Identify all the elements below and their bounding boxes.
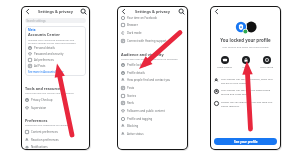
button[interactable]: Active status — [118, 130, 187, 138]
staticText: Content preferences — [31, 130, 58, 134]
staticText: Followers and public content — [127, 109, 165, 113]
staticText: Blocking — [127, 124, 139, 128]
button[interactable]: Your time on Facebook — [118, 14, 187, 22]
staticText: Your time on Facebook — [127, 16, 158, 20]
staticText: Customize your experience on Facebook. — [25, 123, 71, 126]
button[interactable]: Notifications — [22, 143, 89, 149]
staticText: Manage your connected experiences and ac… — [28, 38, 83, 44]
button[interactable]: Blocking — [118, 122, 187, 130]
button[interactable]: Dark mode — [118, 29, 187, 37]
staticText: Learn more — [260, 65, 273, 68]
staticText: How people find and contact you — [127, 78, 171, 82]
button[interactable]: Supervision — [22, 104, 89, 112]
staticText: Unlock — [242, 65, 250, 68]
button[interactable]: Back — [213, 8, 220, 15]
button[interactable]: Browser — [118, 21, 187, 29]
staticText: Audience and visibility — [121, 52, 164, 57]
staticText: Ad preferences — [34, 58, 54, 62]
button[interactable]: Unlock — [235, 56, 256, 68]
staticText: See your profile — [234, 140, 258, 144]
button[interactable]: Ad preferences — [28, 57, 83, 63]
button[interactable]: How people find and contact you — [118, 76, 187, 84]
button[interactable]: Learn more — [256, 56, 277, 68]
button[interactable]: Password and security — [28, 51, 83, 57]
staticText: Dark mode — [127, 31, 142, 35]
staticText: Privacy Checkup — [31, 98, 53, 102]
staticText: Ad Posts — [34, 64, 46, 68]
staticText: Notifications — [31, 145, 48, 149]
staticText: Profile details — [127, 71, 145, 75]
button[interactable]: Ad Posts — [28, 63, 83, 69]
staticText: Posts — [127, 86, 135, 90]
button[interactable]: Profile and tagging — [118, 115, 187, 123]
staticText: Active status — [127, 132, 144, 136]
button[interactable]: Back — [24, 8, 31, 15]
button[interactable]: Reels — [118, 99, 187, 107]
button[interactable]: Search settings — [25, 18, 86, 23]
button[interactable]: Reaction preferences — [22, 136, 89, 144]
staticText: Tools and resources — [25, 86, 63, 91]
staticText: Only friends can see your full-sized pro… — [221, 88, 277, 96]
staticText: Reaction preferences — [31, 138, 59, 142]
staticText: Preferences — [25, 118, 48, 123]
staticText: Profile locking — [127, 63, 146, 67]
button[interactable]: Posts — [118, 84, 187, 92]
staticText: Tools that help you control your experie… — [25, 91, 75, 94]
staticText: Search settings — [25, 19, 46, 23]
staticText: Meta — [28, 28, 36, 32]
staticText: Control who sees your info and posts on … — [121, 57, 179, 60]
staticText: People can still search for you and send… — [221, 100, 277, 108]
staticText: Your photos and posts are more private. — [211, 45, 280, 48]
button[interactable]: Connect with Hearing support — [118, 37, 187, 45]
button[interactable]: Followers and public content — [118, 107, 187, 115]
staticText: See more in Accounts Center — [28, 70, 64, 74]
button[interactable]: Personal details — [28, 45, 83, 51]
staticText: Personal details — [34, 46, 55, 50]
staticText: Password and security — [34, 52, 64, 56]
button[interactable]: Search — [178, 8, 185, 15]
staticText: Settings & privacy — [38, 9, 74, 14]
staticText: Supervision — [31, 106, 47, 110]
staticText: Invite friends — [217, 65, 232, 68]
button[interactable]: See your profile — [214, 138, 277, 145]
button[interactable]: Invite friends — [214, 56, 235, 68]
button[interactable]: Content preferences — [22, 128, 89, 136]
staticText: Stories — [127, 94, 137, 98]
button[interactable]: Back — [120, 8, 127, 15]
staticText: Profile and tagging — [127, 117, 153, 121]
staticText: Settings & privacy — [135, 9, 171, 14]
staticText: Reels — [127, 101, 134, 105]
staticText: Only friends can see your photos, posts … — [221, 77, 277, 85]
staticText: Accounts Center — [28, 32, 60, 37]
staticText: Connect with Hearing support — [127, 39, 167, 43]
staticText: Browser — [127, 23, 138, 27]
button[interactable]: Profile locking — [118, 61, 187, 69]
button[interactable]: Search — [80, 8, 87, 15]
button[interactable]: Stories — [118, 92, 187, 100]
staticText: You locked your profile — [211, 37, 280, 43]
button[interactable]: Privacy Checkup — [22, 96, 89, 104]
button[interactable]: Profile details — [118, 69, 187, 77]
